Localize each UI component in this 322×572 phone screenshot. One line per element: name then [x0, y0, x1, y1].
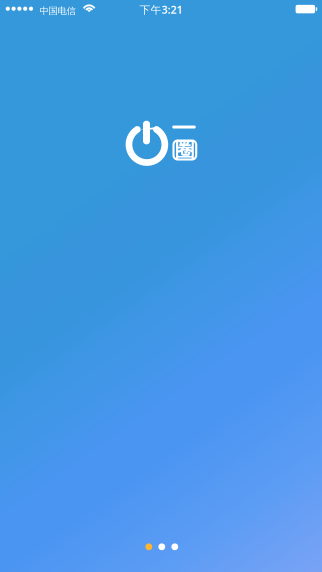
staticText: 中国电信	[39, 5, 75, 17]
staticText: 下午3:21	[139, 2, 182, 17]
staticText: 圈	[175, 138, 195, 162]
button[interactable]: Page 1 of 3	[145, 543, 178, 550]
